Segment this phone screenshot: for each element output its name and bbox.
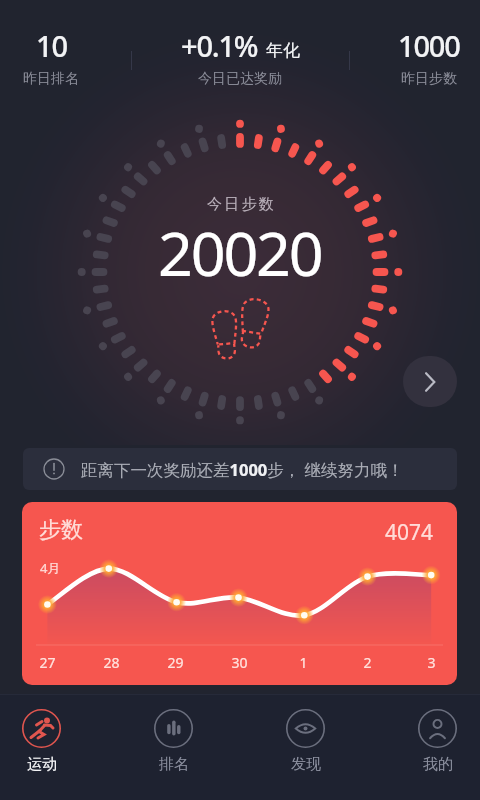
staticText: 20020 bbox=[158, 211, 322, 294]
button[interactable]: 10 bbox=[0, 26, 102, 88]
staticText: 今日已达奖励 bbox=[198, 70, 282, 88]
button[interactable]: +0.1% bbox=[164, 26, 316, 88]
staticText: 排名 bbox=[159, 755, 189, 774]
button[interactable]: 排名 bbox=[140, 709, 207, 774]
button[interactable]: 距离下一次奖励还差1000步， 继续努力哦！ bbox=[23, 448, 457, 490]
staticText: 28 bbox=[103, 653, 120, 672]
button[interactable]: 我的 bbox=[404, 709, 471, 774]
staticText: 发现 bbox=[291, 755, 321, 774]
staticText: 运动 bbox=[27, 755, 57, 774]
staticText: 1000 bbox=[398, 26, 460, 65]
button[interactable]: 运动 bbox=[8, 709, 75, 774]
staticText: 4月 bbox=[40, 559, 61, 577]
staticText: 3 bbox=[427, 653, 436, 672]
button[interactable]: 步数 bbox=[22, 502, 457, 685]
staticText: 昨日排名 bbox=[23, 70, 79, 88]
staticText: 昨日步数 bbox=[401, 70, 457, 88]
staticText: 30 bbox=[231, 653, 248, 672]
button[interactable]: 发现 bbox=[272, 709, 339, 774]
staticText: 2 bbox=[363, 653, 372, 672]
staticText: 年化 bbox=[266, 40, 300, 61]
staticText: 今日步数 bbox=[207, 195, 276, 214]
staticText: 距离下一次奖励还差1000步， 继续努力哦！ bbox=[81, 458, 404, 481]
staticText: 步数 bbox=[39, 516, 83, 544]
button[interactable]: 1000 bbox=[378, 26, 480, 88]
staticText: +0.1% bbox=[181, 26, 258, 65]
staticText: 10 bbox=[36, 26, 67, 65]
button[interactable]: Next bbox=[403, 356, 457, 407]
staticText: 1 bbox=[299, 653, 308, 672]
staticText: 4074 bbox=[385, 518, 434, 547]
staticText: 27 bbox=[39, 653, 56, 672]
staticText: 我的 bbox=[423, 755, 453, 774]
staticText: 29 bbox=[167, 653, 184, 672]
